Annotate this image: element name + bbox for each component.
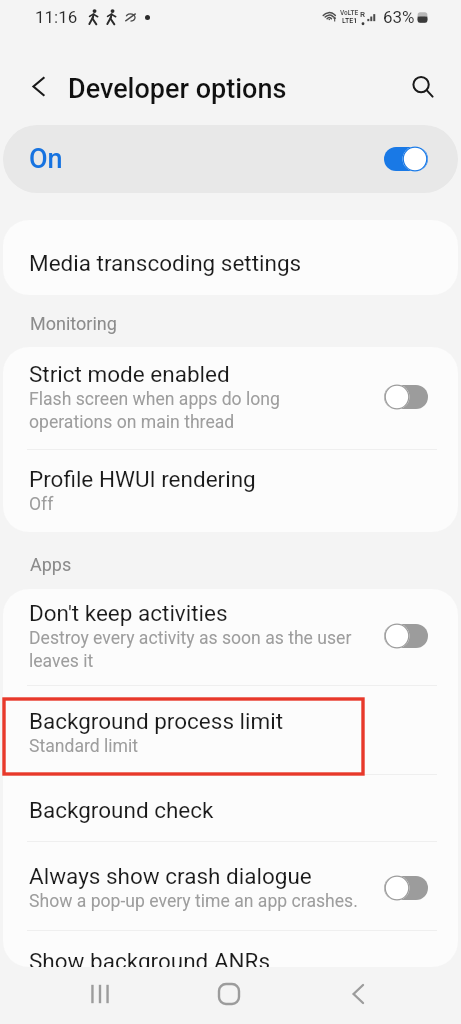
button[interactable]: Switch off [383,383,429,411]
staticText: Background process limit [29,708,284,734]
button[interactable]: Always show crash dialogue [3,842,458,930]
staticText: Show a pop-up every time an app crashes. [29,891,358,912]
staticText: Off [29,494,54,515]
staticText: Flash screen when apps do long operation… [29,389,280,432]
button[interactable]: Back [328,965,387,1022]
staticText: Don't keep activities [29,600,228,626]
staticText: Destroy every activity as soon as the us… [29,628,352,671]
staticText: Strict mode enabled [29,361,230,387]
staticText: Show background ANRs [29,948,271,967]
button[interactable]: Strict mode enabled [3,347,458,449]
staticText: On [29,143,63,175]
staticText: Developer options [68,73,287,105]
button[interactable]: Navigate up [18,66,59,107]
staticText: Background check [29,797,214,823]
staticText: R [360,10,366,19]
staticText: Apps [30,554,72,575]
staticText: 63% [383,7,415,27]
staticText: Media transcoding settings [29,250,302,276]
button[interactable]: Show background ANRs [3,931,458,967]
button[interactable]: Background check [3,775,458,841]
staticText: Standard limit [29,736,139,757]
staticText: Always show crash dialogue [29,863,312,889]
staticText: LTE1 [342,17,358,25]
button[interactable]: Switch off [383,874,429,902]
button[interactable]: Search [401,65,444,108]
button[interactable]: Switch on [383,145,429,173]
button[interactable]: Don't keep activities [3,589,458,685]
button[interactable]: On [3,125,458,193]
staticText: 11:16 [35,7,78,27]
button[interactable]: Background process limit [3,686,458,774]
button[interactable]: Profile HWUI rendering [3,450,458,532]
button[interactable]: Recent apps [70,965,129,1022]
button[interactable]: Home [199,965,258,1022]
staticText: Profile HWUI rendering [29,466,256,492]
staticText: VoLTE [340,9,359,17]
button[interactable]: Media transcoding settings [3,220,458,295]
staticText: Monitoring [30,313,117,334]
button[interactable]: Switch off [383,622,429,650]
